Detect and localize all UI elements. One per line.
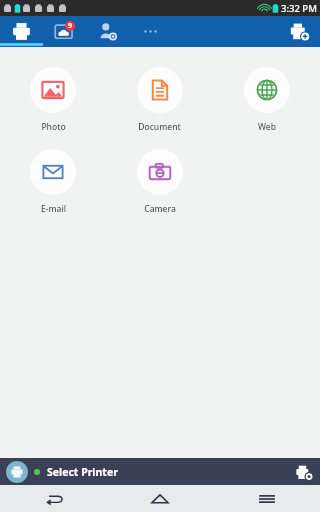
- staticText: 3:32 PM: [281, 2, 317, 15]
- staticText: Photo: [41, 121, 66, 133]
- staticText: 9: [68, 21, 73, 31]
- button[interactable]: Cloud storage: [43, 16, 86, 47]
- button[interactable]: Recent apps: [213, 485, 320, 512]
- button[interactable]: Web: [213, 65, 320, 135]
- button[interactable]: Add printer: [280, 16, 320, 47]
- button[interactable]: Print: [0, 16, 43, 47]
- button[interactable]: Camera: [106, 147, 213, 217]
- button[interactable]: Document: [106, 65, 213, 135]
- button[interactable]: More options: [129, 16, 172, 47]
- staticText: Web: [258, 121, 276, 133]
- staticText: E-mail: [41, 203, 66, 215]
- button[interactable]: Add account: [86, 16, 129, 47]
- staticText: Select Printer: [47, 465, 118, 479]
- button[interactable]: E-mail: [0, 147, 106, 217]
- button[interactable]: Select Printer: [0, 458, 320, 485]
- staticText: Camera: [144, 203, 176, 215]
- staticText: Document: [138, 121, 181, 133]
- button[interactable]: Home: [106, 485, 213, 512]
- button[interactable]: Printer settings: [291, 459, 317, 485]
- button[interactable]: Back: [0, 485, 106, 512]
- button[interactable]: Photo: [0, 65, 106, 135]
